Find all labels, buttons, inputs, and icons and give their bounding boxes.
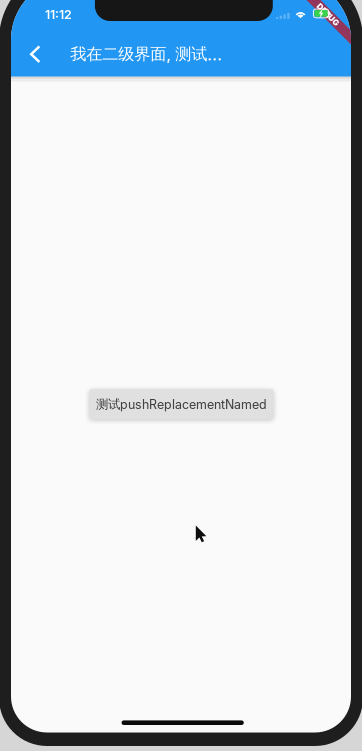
button[interactable]: 测试pushReplacementNamed [89, 389, 273, 419]
staticText: 11:12 [45, 7, 72, 22]
staticText: 测试pushReplacementNamed [96, 396, 267, 412]
button[interactable]: Back [13, 32, 57, 76]
staticText: DEBUG [314, 9, 342, 19]
staticText: 我在二级界面, 测试... [70, 44, 222, 64]
button[interactable]: 我在二级界面, 测试... [70, 32, 270, 76]
